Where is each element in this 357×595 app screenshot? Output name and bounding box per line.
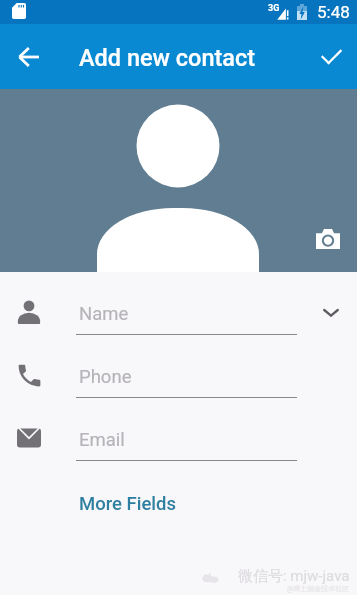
staticText: Email — [79, 429, 125, 451]
staticText: Phone — [79, 366, 132, 388]
staticText: More Fields — [79, 493, 177, 515]
button[interactable]: Back — [0, 29, 56, 85]
staticText: @稀土掘金技术社区 — [287, 584, 350, 593]
button[interactable]: Change photo — [308, 219, 348, 259]
staticText: Name — [79, 303, 129, 325]
button[interactable]: Save contact — [301, 29, 357, 85]
staticText: 5:48 — [317, 2, 350, 22]
button[interactable]: Name — [0, 272, 357, 335]
staticText: 3G — [268, 3, 280, 14]
button[interactable]: More Fields — [63, 489, 193, 519]
button[interactable]: Expand name fields — [317, 298, 345, 326]
button[interactable]: Email — [0, 398, 357, 461]
button[interactable]: Phone — [0, 335, 357, 398]
staticText: 微信号: mjw-java — [238, 567, 350, 586]
staticText: Add new contact — [79, 44, 256, 72]
